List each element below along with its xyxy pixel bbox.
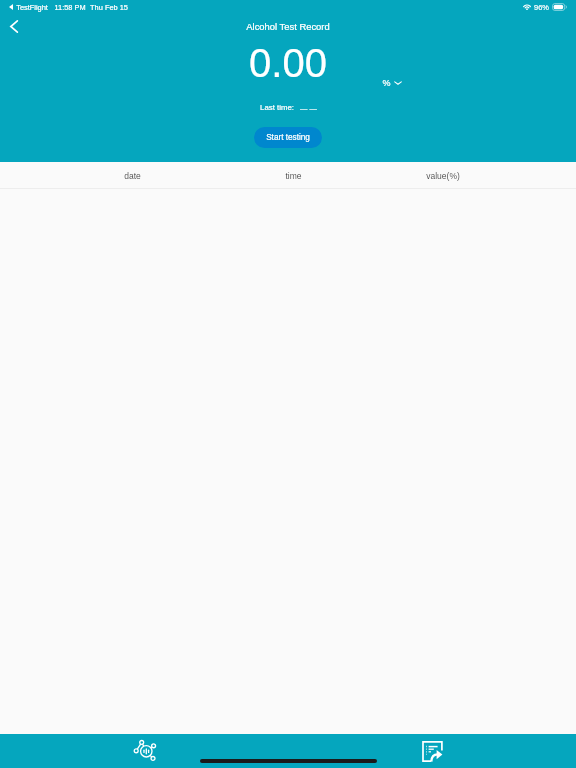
button[interactable]: Records bbox=[412, 736, 453, 766]
staticText: value(%) bbox=[426, 171, 460, 180]
button[interactable]: % bbox=[382, 78, 402, 88]
staticText: time bbox=[285, 171, 302, 180]
staticText: Last time: bbox=[260, 103, 294, 112]
button[interactable]: date bbox=[92, 162, 172, 188]
staticText: TestFlight bbox=[16, 3, 48, 11]
staticText: Start testing bbox=[266, 133, 310, 142]
staticText: Alcohol Test Record bbox=[246, 21, 330, 32]
staticText: % bbox=[382, 78, 391, 88]
button[interactable]: Back bbox=[0, 13, 28, 39]
staticText: 0.00 bbox=[249, 41, 327, 86]
staticText: date bbox=[124, 171, 141, 180]
staticText: — — bbox=[300, 104, 317, 112]
button[interactable]: time bbox=[253, 162, 333, 188]
button[interactable]: Test bbox=[124, 736, 165, 766]
staticText: Thu Feb 15 bbox=[90, 3, 128, 11]
staticText: 96% bbox=[534, 3, 549, 11]
button[interactable]: Start testing bbox=[254, 127, 322, 148]
button[interactable]: value(%) bbox=[403, 162, 483, 188]
staticText: 11:58 PM bbox=[54, 3, 86, 11]
